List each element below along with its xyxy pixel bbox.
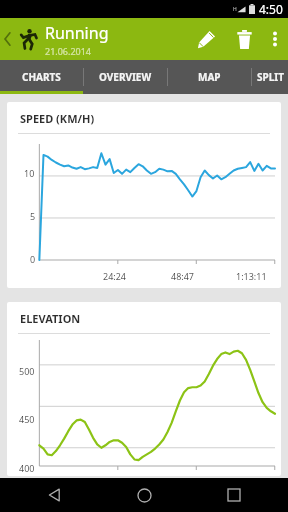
button[interactable]: MAP (168, 60, 251, 94)
staticText: 450 (19, 413, 35, 425)
button[interactable]: More options (262, 18, 288, 60)
staticText: SPLIT (257, 70, 284, 84)
staticText: 24:24 (103, 270, 127, 282)
staticText: SPEED (KM/H) (20, 111, 95, 126)
staticText: ELEVATION (20, 311, 81, 326)
staticText: 1:13:11 (236, 270, 267, 282)
button[interactable]: Delete (226, 18, 262, 60)
button[interactable]: Home (109, 478, 179, 512)
staticText: 21.06.2014 (45, 45, 92, 57)
staticText: 400 (19, 462, 35, 474)
staticText: 10 (24, 167, 35, 179)
button[interactable]: Edit (186, 18, 226, 60)
button[interactable]: Back (20, 478, 90, 512)
staticText: CHARTS (22, 70, 61, 84)
staticText: 4:50 (259, 1, 283, 17)
staticText: OVERVIEW (99, 70, 152, 84)
staticText: 500 (19, 365, 35, 377)
staticText: 48:47 (171, 270, 195, 282)
staticText: MAP (198, 70, 221, 84)
button[interactable]: Navigate up (0, 18, 15, 60)
button[interactable]: CHARTS (0, 60, 83, 94)
staticText: H (233, 6, 237, 13)
staticText: 0 (30, 253, 36, 265)
button[interactable]: Recent apps (199, 478, 269, 512)
staticText: 5 (30, 210, 36, 222)
button[interactable]: SPLIT (252, 60, 288, 94)
staticText: Running (45, 22, 109, 44)
button[interactable]: OVERVIEW (84, 60, 167, 94)
